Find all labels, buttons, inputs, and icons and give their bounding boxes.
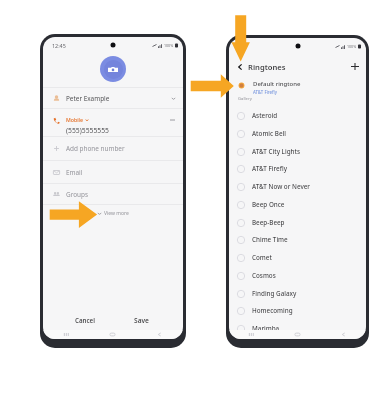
staticText: Beep Once bbox=[252, 200, 285, 209]
staticText: Beep-Beep bbox=[252, 218, 285, 227]
button[interactable]: Recents bbox=[229, 330, 274, 339]
button[interactable]: Groups bbox=[43, 184, 183, 204]
staticText: 12:45 bbox=[52, 42, 66, 49]
staticText: (555)5555555 bbox=[66, 126, 109, 135]
button[interactable]: Back bbox=[320, 330, 366, 339]
staticText: Ringtones bbox=[248, 62, 286, 72]
other: Step 3 pointer bbox=[49, 201, 98, 229]
staticText: Groups bbox=[66, 190, 88, 199]
staticText: AT&T Now or Never bbox=[252, 182, 310, 191]
staticText: Atomic Bell bbox=[252, 129, 286, 138]
staticText: Homecoming bbox=[252, 306, 293, 315]
staticText: Save bbox=[134, 316, 149, 325]
staticText: Cosmos bbox=[252, 271, 276, 280]
button[interactable]: AT&T Firefly bbox=[229, 160, 366, 177]
button[interactable]: Mobile bbox=[43, 109, 183, 136]
staticText: Default ringtone bbox=[253, 80, 301, 88]
button[interactable]: Cancel bbox=[56, 310, 113, 330]
staticText: Cancel bbox=[75, 316, 95, 324]
button[interactable]: AT&T City Lights bbox=[229, 143, 366, 160]
button[interactable]: Asteroid bbox=[229, 107, 366, 124]
staticText: Mobile bbox=[66, 116, 83, 123]
staticText: 100% bbox=[164, 43, 174, 48]
staticText: Gallery bbox=[238, 96, 252, 102]
button[interactable]: Back bbox=[136, 330, 183, 339]
button[interactable]: Contact photo bbox=[100, 56, 126, 82]
staticText: Asteroid bbox=[252, 111, 278, 120]
button[interactable]: Beep-Beep bbox=[229, 214, 366, 231]
button[interactable]: Add phone number bbox=[43, 137, 183, 160]
button[interactable]: View more bbox=[94, 208, 132, 219]
staticText: Marimba bbox=[252, 324, 280, 333]
staticText: Finding Galaxy bbox=[252, 289, 297, 298]
button[interactable]: Cosmos bbox=[229, 267, 366, 284]
other: Step 1 pointer bbox=[230, 14, 252, 63]
button[interactable]: Chime Time bbox=[229, 231, 366, 248]
button[interactable]: Recents bbox=[43, 330, 89, 339]
button[interactable]: Home bbox=[274, 330, 320, 339]
staticText: Peter Example bbox=[66, 94, 110, 103]
staticText: Add phone number bbox=[66, 144, 125, 153]
staticText: AT&T Firefly bbox=[252, 164, 287, 173]
staticText: Chime Time bbox=[252, 235, 288, 244]
staticText: Email bbox=[66, 168, 83, 177]
button[interactable]: Default ringtone bbox=[229, 79, 366, 96]
staticText: AT&T Firefly bbox=[253, 89, 277, 95]
button[interactable]: Marimba bbox=[229, 320, 366, 337]
button[interactable]: Homecoming bbox=[229, 302, 366, 319]
staticText: Comet bbox=[252, 253, 272, 262]
button[interactable]: Email bbox=[43, 161, 183, 183]
staticText: AT&T City Lights bbox=[252, 147, 300, 156]
button[interactable]: Peter Example bbox=[43, 88, 183, 108]
staticText: 100% bbox=[347, 44, 357, 49]
button[interactable]: Back bbox=[234, 61, 245, 72]
button[interactable]: Finding Galaxy bbox=[229, 285, 366, 302]
other: Step 2 pointer bbox=[190, 70, 235, 98]
button[interactable]: Add bbox=[349, 61, 360, 72]
button[interactable]: Comet bbox=[229, 249, 366, 266]
button[interactable]: Beep Once bbox=[229, 196, 366, 213]
button[interactable]: Save bbox=[113, 310, 170, 330]
button[interactable]: Atomic Bell bbox=[229, 125, 366, 142]
button[interactable]: AT&T Now or Never bbox=[229, 178, 366, 195]
button[interactable]: Home bbox=[89, 330, 136, 339]
staticText: View more bbox=[104, 210, 129, 217]
